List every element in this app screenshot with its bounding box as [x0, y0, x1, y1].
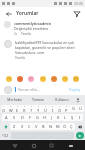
- staticText: Ş: [71, 115, 74, 120]
- staticText: 9: [59, 105, 61, 108]
- button[interactable]: 6: [35, 105, 42, 112]
- button[interactable]: Emoji: [5, 75, 13, 83]
- button[interactable]: balikfiyatlari999 Sonsuzbulut en çok: [0, 38, 85, 62]
- staticText: Ğ: [72, 106, 75, 111]
- button[interactable]: Filter: [72, 9, 81, 18]
- staticText: Y: [37, 108, 40, 112]
- staticText: 4: [24, 105, 26, 108]
- button[interactable]: Emoji: [72, 75, 80, 83]
- staticText: 3: [17, 105, 19, 108]
- button[interactable]: Emoji: [39, 75, 47, 83]
- button[interactable]: commentlyticsadmin: [0, 20, 85, 38]
- button[interactable]: V: [33, 123, 40, 130]
- staticText: Yorumlar: [16, 10, 39, 17]
- button[interactable]: X: [18, 123, 26, 130]
- staticText: ?123: [2, 134, 9, 138]
- button[interactable]: 2: [7, 105, 14, 112]
- button[interactable]: C: [26, 123, 33, 130]
- staticText: A: [5, 115, 8, 120]
- staticText: R: [23, 108, 26, 112]
- button[interactable]: Recents: [47, 141, 56, 150]
- button[interactable]: G: [34, 114, 41, 121]
- staticText: O: [58, 108, 62, 112]
- button[interactable]: ?123: [1, 132, 10, 139]
- button[interactable]: A: [2, 114, 10, 121]
- button[interactable]: 3: [14, 105, 21, 112]
- staticText: 8: [52, 105, 54, 108]
- staticText: F: [29, 115, 32, 120]
- button[interactable]: Yanıtla: [21, 32, 31, 36]
- button[interactable]: Ü: [77, 105, 84, 112]
- staticText: balikfiyatlari999 Sonsuzbulut en çok: [15, 40, 74, 45]
- staticText: 6: [38, 105, 40, 108]
- button[interactable]: 8: [49, 105, 56, 112]
- button[interactable]: Ş: [69, 114, 76, 121]
- staticText: N: [49, 124, 53, 129]
- staticText: 0: [66, 105, 68, 108]
- staticText: S: [13, 115, 16, 120]
- button[interactable]: H: [41, 114, 48, 121]
- button[interactable]: N: [47, 123, 54, 130]
- button[interactable]: Back: [4, 9, 13, 18]
- button[interactable]: K: [55, 114, 62, 121]
- button[interactable]: J: [48, 114, 55, 121]
- button[interactable]: 0: [63, 105, 70, 112]
- staticText: Sonuzbulutz .com: [15, 50, 45, 55]
- button[interactable]: Keyboard: [66, 141, 75, 150]
- button[interactable]: Backspace: [75, 123, 84, 130]
- button[interactable]: M: [54, 123, 61, 130]
- button[interactable]: 7: [42, 105, 49, 112]
- button[interactable]: Merhaba: [3, 95, 26, 104]
- staticText: commentlyticsadmin: [14, 21, 51, 26]
- button[interactable]: 9: [56, 105, 63, 112]
- button[interactable]: L: [62, 114, 69, 121]
- staticText: V: [35, 124, 38, 129]
- staticText: Q: [2, 108, 6, 112]
- staticText: 2: [10, 105, 12, 108]
- staticText: B: [42, 124, 45, 129]
- button[interactable]: Kullanıcı: [50, 95, 74, 104]
- staticText: I: [52, 108, 54, 112]
- staticText: G: [36, 115, 39, 120]
- staticText: Kullanıcı: [55, 97, 69, 102]
- button[interactable]: D: [18, 114, 26, 121]
- button[interactable]: 1: [1, 105, 7, 112]
- button[interactable]: Yanıtla: [15, 56, 25, 60]
- staticText: 20:06: [74, 1, 83, 6]
- button[interactable]: Shift: [1, 123, 10, 130]
- button[interactable]: Ç: [68, 123, 75, 130]
- button[interactable]: B: [40, 123, 47, 130]
- staticText: H: [43, 115, 46, 120]
- button[interactable]: Voice input: [74, 95, 82, 104]
- button[interactable]: Ö: [61, 123, 68, 130]
- staticText: Ç: [70, 124, 73, 129]
- staticText: P: [65, 108, 68, 112]
- staticText: Tamam: [32, 97, 44, 102]
- button[interactable]: Emoji: [16, 75, 24, 83]
- staticText: M: [56, 124, 60, 129]
- button[interactable]: S: [10, 114, 18, 121]
- button[interactable]: Z: [10, 123, 18, 130]
- button[interactable]: Paylaş: [69, 87, 81, 92]
- staticText: Ü: [79, 106, 82, 111]
- button[interactable]: Emoji: [27, 75, 35, 83]
- button[interactable]: Emoji: [50, 75, 58, 83]
- button[interactable]: I: [76, 114, 83, 121]
- button[interactable]: Home: [29, 141, 38, 150]
- button[interactable]: Back: [10, 141, 19, 150]
- button[interactable]: 4: [21, 105, 28, 112]
- staticText: 5: [31, 105, 33, 108]
- staticText: W: [9, 108, 13, 112]
- staticText: U: [44, 108, 47, 112]
- button[interactable]: Send: [76, 132, 84, 139]
- staticText: kapatılan, güvenilir ve popüleri siteri: [15, 45, 75, 50]
- button[interactable]: 5: [28, 105, 35, 112]
- staticText: K: [57, 115, 60, 120]
- staticText: 7: [45, 105, 47, 108]
- staticText: 3s: [14, 32, 18, 36]
- button[interactable]: Ğ: [70, 105, 77, 112]
- button[interactable]: F: [26, 114, 34, 121]
- button[interactable]: Tamam: [26, 95, 50, 104]
- button[interactable]: Emoji: [61, 75, 69, 83]
